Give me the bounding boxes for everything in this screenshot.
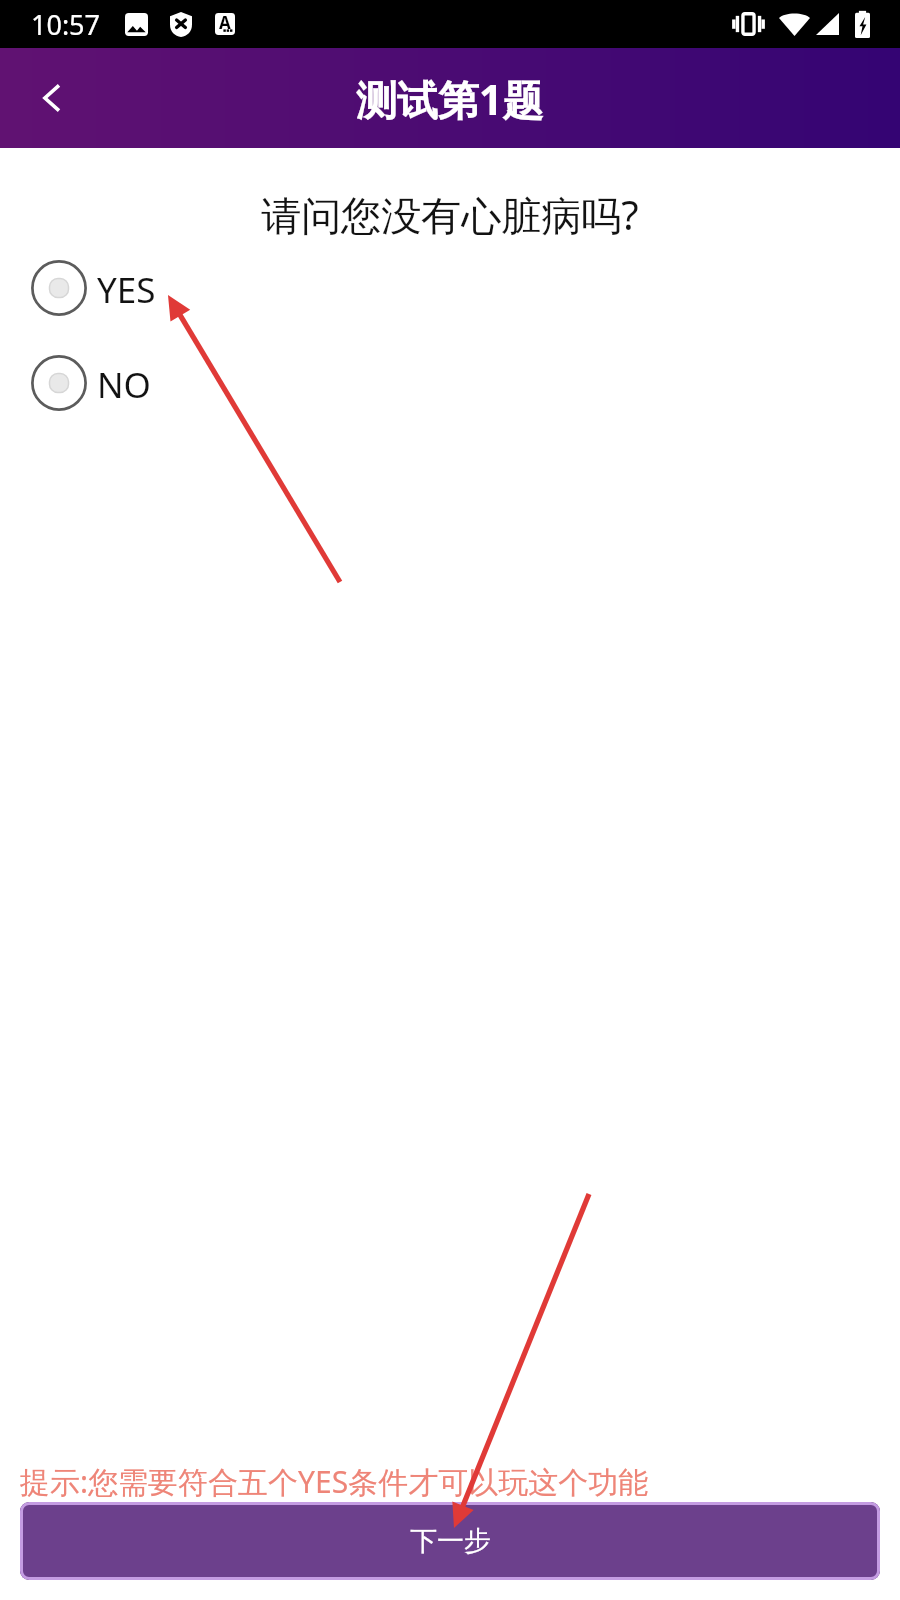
button[interactable]: NO — [0, 355, 175, 411]
staticText: 提示:您需要符合五个YES条件才可以玩这个功能 — [20, 1461, 649, 1502]
staticText: 10:57 — [31, 6, 101, 43]
staticText: YES — [97, 266, 156, 314]
staticText: A — [219, 11, 231, 33]
button[interactable]: Back — [20, 68, 80, 128]
staticText: NO — [97, 361, 151, 409]
button[interactable]: YES — [0, 260, 180, 316]
staticText: 请问您没有心脏病吗? — [0, 187, 900, 242]
staticText: 测试第1题 — [356, 71, 544, 127]
staticText: 下一步 — [410, 1524, 491, 1558]
button[interactable]: 下一步 — [20, 1502, 880, 1580]
